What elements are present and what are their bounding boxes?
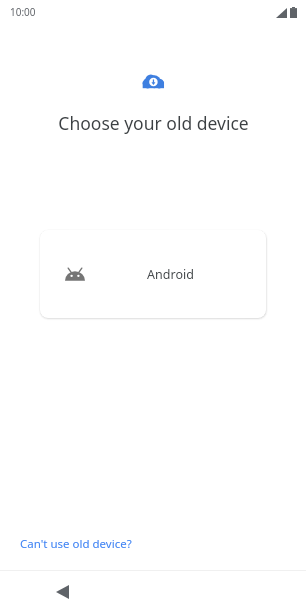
button[interactable]: Can't use old device? (0, 528, 306, 560)
staticText: Choose your old device (58, 111, 249, 135)
button[interactable]: Android (40, 230, 266, 318)
staticText: Can't use old device? (20, 536, 132, 552)
button[interactable]: Back (46, 576, 78, 608)
staticText: 10:00 (10, 5, 36, 19)
staticText: Android (147, 266, 194, 283)
